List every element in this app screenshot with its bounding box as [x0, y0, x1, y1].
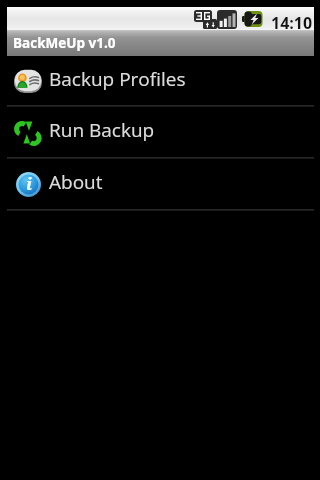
- staticText: Run Backup: [49, 117, 155, 143]
- staticText: BackMeUp v1.0: [13, 34, 116, 52]
- staticText: i: [26, 172, 33, 195]
- button[interactable]: Backup Profiles: [7, 56, 314, 105]
- staticText: Backup Profiles: [49, 66, 186, 92]
- staticText: 14:10: [271, 12, 313, 34]
- button[interactable]: i: [7, 159, 314, 209]
- staticText: About: [49, 169, 103, 195]
- button[interactable]: Run Backup: [7, 107, 314, 157]
